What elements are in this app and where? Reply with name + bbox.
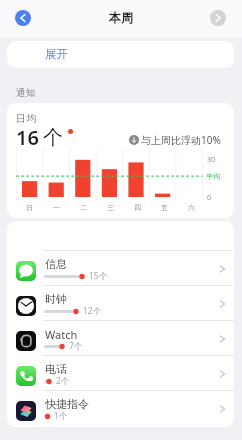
staticText: 本周 [109,10,133,25]
staticText: 15个 [89,270,108,282]
staticText: 7个 [69,340,83,352]
staticText: 个 [43,125,63,150]
button[interactable]: Watch [7,321,234,356]
button[interactable]: 信息 [7,251,234,286]
staticText: 电话 [45,362,67,376]
staticText: 快捷指令 [45,397,89,411]
staticText: 时钟 [45,292,67,306]
staticText: 展开 [45,47,68,61]
staticText: 12个 [83,305,102,317]
staticText: 二 [80,203,87,212]
staticText: 0 [207,193,212,203]
staticText: 通知 [16,87,35,99]
staticText: 信息 [45,257,67,271]
staticText: 五 [161,203,168,212]
staticText: 四 [134,203,141,212]
button[interactable]: 电话 [7,356,234,391]
button[interactable]: 时钟 [7,286,234,321]
staticText: 日均 [16,112,36,125]
staticText: Watch [45,327,78,342]
staticText: 2个 [56,375,70,387]
staticText: 与上周比浮动10% [141,133,221,147]
staticText: 16 [16,124,39,151]
button[interactable]: 快捷指令 [7,391,234,426]
staticText: 三 [107,203,114,212]
staticText: 一 [53,203,60,212]
button[interactable]: 前进 [210,10,226,26]
button[interactable]: 返回 [15,10,31,26]
staticText: 六 [188,203,195,212]
staticText: 30 [207,155,216,165]
staticText: 平均 [206,172,220,181]
staticText: 1个 [54,410,68,422]
button[interactable]: 展开 [7,41,234,68]
staticText: 日 [26,203,33,212]
